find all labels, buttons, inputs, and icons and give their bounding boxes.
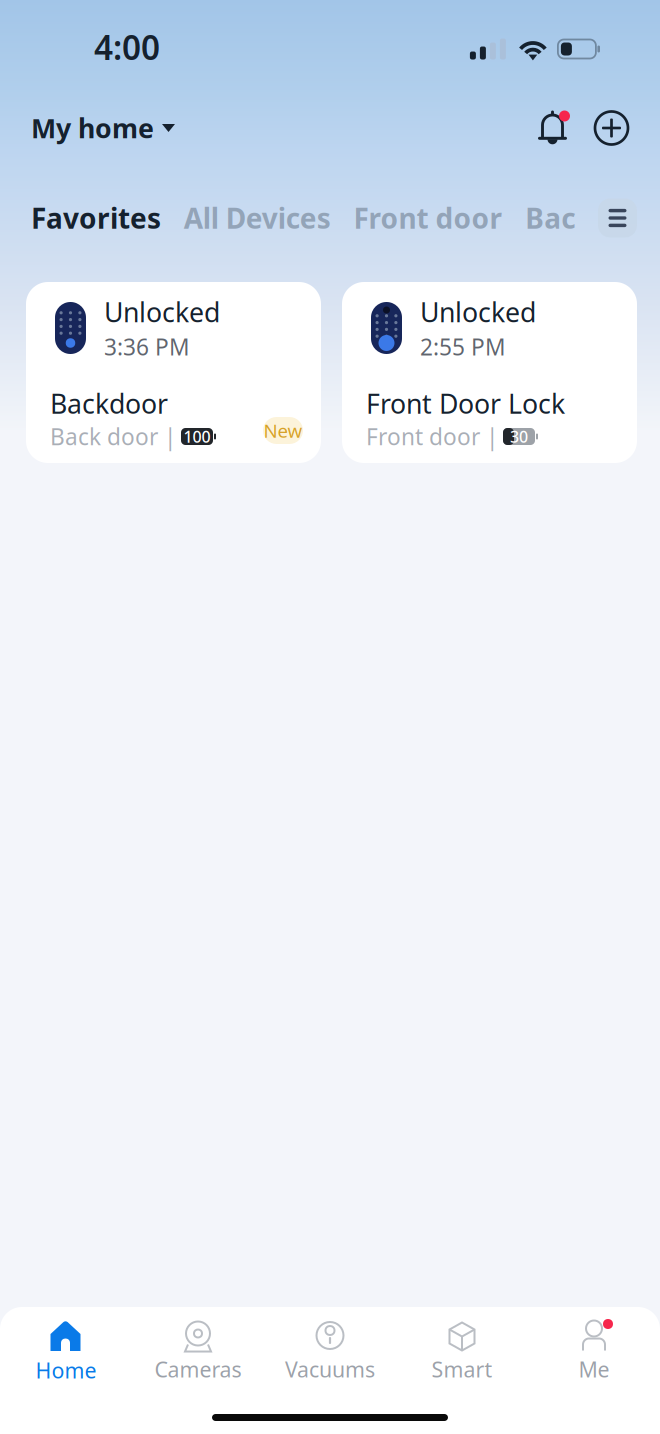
staticText: Front door	[353, 199, 502, 237]
staticText: Unlocked	[104, 294, 220, 330]
button[interactable]: Notifications	[538, 111, 567, 144]
staticText: 2:55 PM	[420, 332, 506, 362]
button[interactable]: Me	[528, 1321, 660, 1383]
staticText: 3:36 PM	[104, 332, 190, 362]
staticText: Home	[35, 1356, 96, 1384]
staticText: Vacuums	[285, 1355, 375, 1383]
button[interactable]: Add device	[594, 110, 629, 145]
staticText: Favorites	[31, 199, 161, 237]
staticText: Unlocked	[420, 294, 536, 330]
button[interactable]: Favorites	[31, 199, 161, 237]
staticText: Front Door Lock	[366, 386, 565, 421]
staticText: 100	[183, 426, 210, 447]
staticText: All Devices	[184, 199, 331, 237]
button[interactable]: Smart	[396, 1321, 528, 1383]
staticText: Me	[578, 1355, 609, 1383]
staticText: 4:00	[94, 25, 160, 69]
staticText: Smart	[431, 1355, 492, 1383]
button[interactable]: Cameras	[132, 1321, 264, 1383]
button[interactable]: Front door	[353, 199, 502, 237]
button[interactable]: My home	[31, 110, 175, 146]
staticText: 30	[510, 426, 528, 447]
button[interactable]: Home	[0, 1320, 132, 1384]
staticText: My home	[31, 110, 154, 146]
staticText: Cameras	[154, 1355, 241, 1383]
button[interactable]: Bac	[525, 199, 575, 237]
staticText: Backdoor	[50, 386, 168, 421]
staticText: Back door |	[50, 421, 176, 451]
button[interactable]: Unlocked	[342, 282, 637, 463]
button[interactable]: More tabs	[598, 198, 637, 237]
button[interactable]: All Devices	[184, 199, 331, 237]
button[interactable]: Unlocked	[26, 282, 321, 463]
staticText: Bac	[525, 199, 575, 237]
button[interactable]: Vacuums	[264, 1321, 396, 1383]
staticText: Front door |	[366, 421, 498, 451]
staticText: New	[263, 418, 302, 443]
